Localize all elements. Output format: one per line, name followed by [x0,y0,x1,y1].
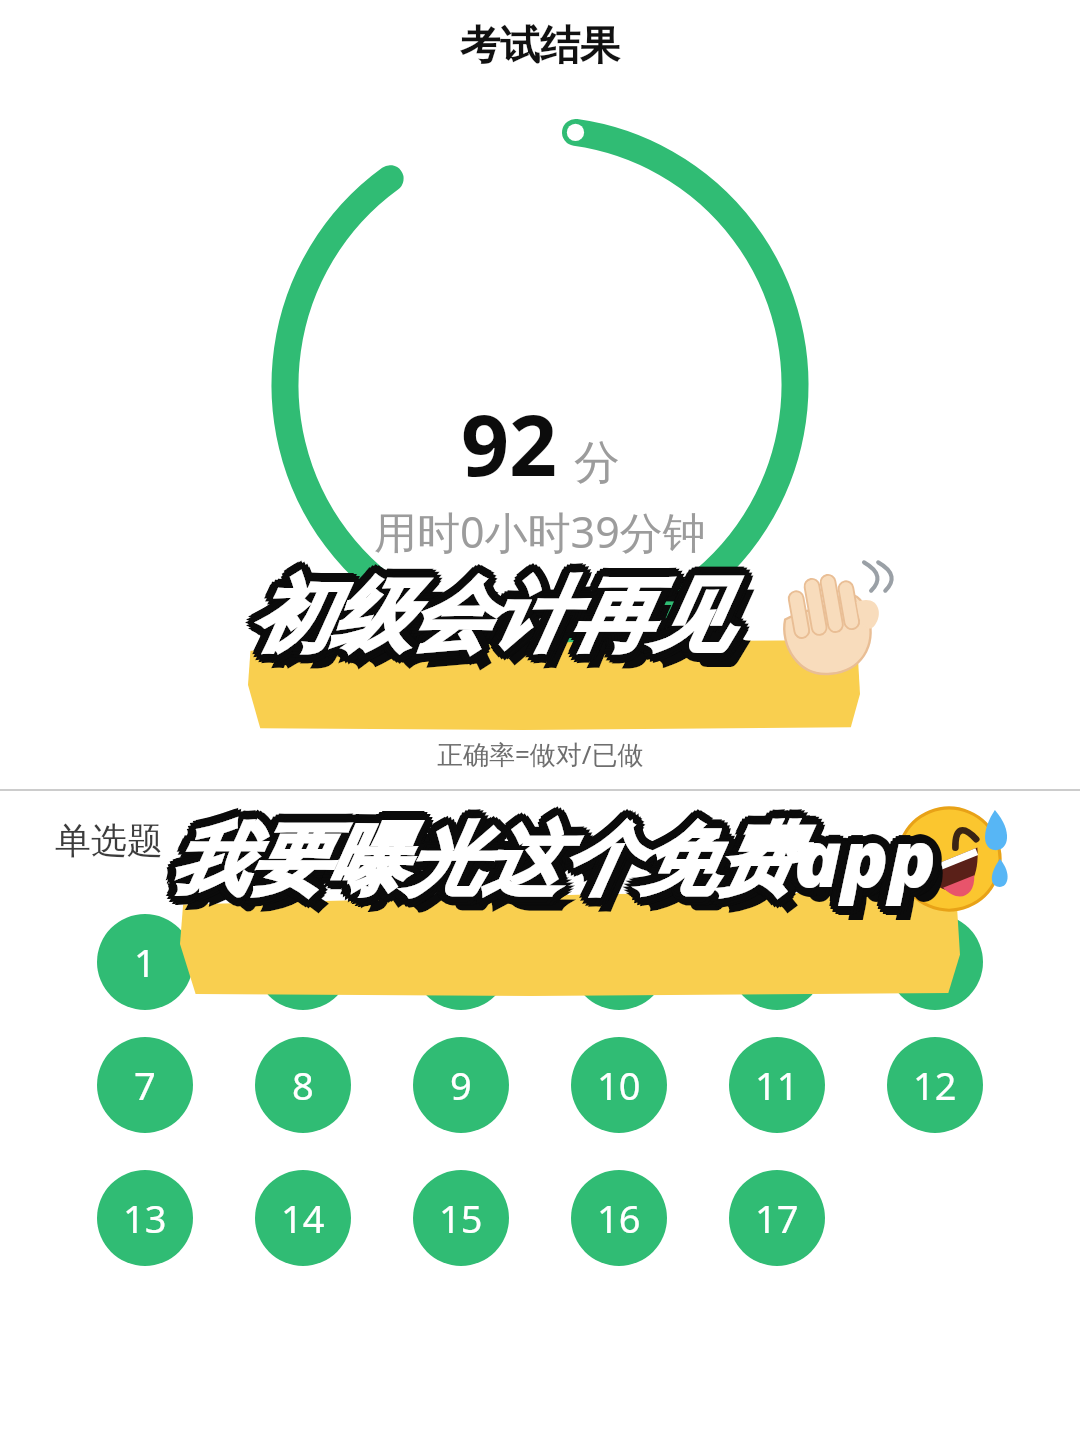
staticText: 初级会计再见 [250,575,730,676]
staticText: 我要曝光这个免费app [170,813,937,920]
staticText: 11 [755,1059,799,1111]
staticText: 初级会计再见 [258,563,738,664]
staticText: 92 [461,386,558,500]
staticText: 我要曝光这个免费app [173,812,940,919]
staticText: 初级会计再见 [250,566,730,667]
staticText: 初级会计再见 [253,558,733,659]
staticText: 我要曝光这个免费app [170,795,937,902]
staticText: 我要曝光这个免费app [162,807,929,914]
button[interactable]: Question 11 [729,1037,825,1133]
staticText: 17 [755,1192,799,1244]
button[interactable]: Question 17 [729,1170,825,1266]
button[interactable]: Question 14 [255,1170,351,1266]
staticText: 初级会计再见 [244,560,724,661]
button[interactable]: Question 3 [413,914,509,1010]
staticText: 9 [450,1059,472,1111]
staticText: 初级会计再见 [247,558,727,659]
staticText: 14 [281,1192,325,1244]
button[interactable]: Question 6 [887,914,983,1010]
staticText: 用时0小时39分钟 [374,502,706,561]
staticText: 我要曝光这个免费app [161,804,928,911]
staticText: 初级会计再见 [253,574,733,675]
staticText: 初级会计再见 [242,569,722,670]
staticText: 单选题 [55,818,163,863]
staticText: 10 [597,1059,641,1111]
staticText: 我要曝光这个免费app [173,796,940,903]
button[interactable]: Question 10 [571,1037,667,1133]
button[interactable]: Question 15 [413,1170,509,1266]
staticText: 我要曝光这个免费app [179,804,946,911]
button[interactable]: Question 4 [571,914,667,1010]
staticText: 我要曝光这个免费app [178,801,945,908]
button[interactable]: Question 16 [571,1170,667,1266]
staticText: 初级会计再见 [241,566,721,667]
button[interactable]: Question 7 [97,1037,193,1133]
staticText: 我要曝光这个免费app [167,796,934,903]
button[interactable]: Question 12 [887,1037,983,1133]
staticText: 初级会计再见 [250,557,730,658]
staticText: 我要曝光这个免费app [176,810,943,917]
staticText: 15 [439,1192,483,1244]
staticText: 初级会计再见 [256,572,736,673]
staticText: 我要曝光这个免费app [164,810,931,917]
staticText: 我要曝光这个免费app [170,804,937,911]
staticText: 分 [574,434,620,492]
staticText: 我要曝光这个免费app [167,812,934,919]
button[interactable]: Question 8 [255,1037,351,1133]
staticText: 13 [123,1192,167,1244]
staticText: 我要曝光这个免费app [180,818,947,925]
staticText: 我要曝光这个免费app [176,798,943,905]
staticText: 初级会计再见 [259,566,739,667]
staticText: 初级会计再见 [258,569,738,670]
staticText: 我要曝光这个免费app [162,801,929,908]
button[interactable]: Question 9 [413,1037,509,1133]
button[interactable]: Question 2 [255,914,351,1010]
button[interactable]: Question 13 [97,1170,193,1266]
staticText: 8 [292,1059,314,1111]
staticText: 初级会计再见 [244,572,724,673]
staticText: 7 [134,1059,156,1111]
staticText: 初级会计再见 [256,560,736,661]
staticText: 16 [597,1192,641,1244]
staticText: 1 [134,936,156,988]
button[interactable]: Question 1 [97,914,193,1010]
staticText: 12 [913,1059,957,1111]
staticText: 我要曝光这个免费app [164,798,931,905]
staticText: 我要曝光这个免费app [178,807,945,914]
staticText: 正确率=做对/已做 [437,736,644,772]
staticText: 考试结果 [460,20,620,70]
staticText: 初级会计再见 [242,563,722,664]
staticText: 初级会计再见 [260,580,740,681]
button[interactable]: Question 5 [729,914,825,1010]
staticText: 初级会计再见 [247,574,727,675]
